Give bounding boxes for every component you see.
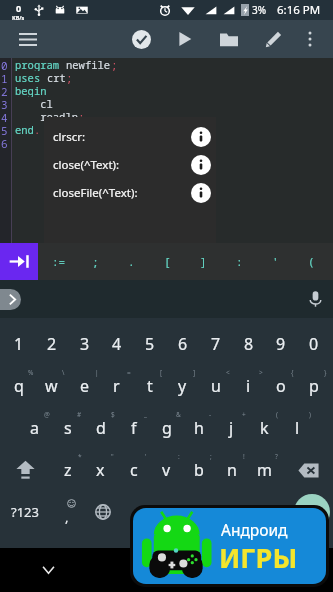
button[interactable]: Run [175, 20, 195, 58]
staticText: := [52, 254, 66, 269]
staticText: 5 [145, 333, 155, 355]
button[interactable]: Space [119, 491, 250, 533]
button[interactable]: 6 [166, 323, 199, 365]
button[interactable]: 9 [264, 323, 297, 365]
staticText: o [276, 375, 286, 397]
button[interactable]: := [41, 243, 77, 280]
button[interactable]: ; [77, 243, 113, 280]
button[interactable]: 7 [199, 323, 232, 365]
button[interactable]: h [182, 407, 215, 449]
staticText: ' [272, 254, 279, 269]
button[interactable]: f [117, 407, 150, 449]
button[interactable]: 0 [297, 323, 330, 365]
staticText: r [113, 375, 120, 397]
staticText: . [34, 123, 41, 136]
staticText: cl [15, 97, 53, 110]
button[interactable]: p [297, 365, 330, 407]
button[interactable]: Back [146, 548, 186, 592]
staticText: - [209, 410, 212, 419]
button[interactable]: a [18, 407, 51, 449]
button[interactable]: l [281, 407, 314, 449]
button[interactable]: Enter [283, 491, 333, 533]
staticText: e [80, 375, 90, 397]
staticText: ] [200, 254, 207, 269]
button[interactable]: Save [131, 20, 151, 58]
button[interactable]: 3 [68, 323, 101, 365]
button[interactable]: Backspace [283, 449, 333, 491]
button[interactable]: d [84, 407, 117, 449]
button[interactable]: c [117, 449, 150, 491]
staticText: } [324, 368, 327, 377]
button[interactable]: Emoji [50, 491, 83, 533]
staticText: ( [276, 410, 278, 419]
button[interactable]: w [35, 365, 68, 407]
button[interactable]: Expand suggestions [0, 289, 21, 310]
button[interactable]: k [248, 407, 281, 449]
staticText: 1 [1, 71, 8, 84]
button[interactable]: r [100, 365, 133, 407]
staticText: f [131, 417, 137, 439]
button[interactable]: n [215, 449, 248, 491]
staticText: b [194, 459, 204, 481]
button[interactable]: 5 [133, 323, 166, 365]
button[interactable]: Hide keyboard [28, 548, 68, 592]
button[interactable]: close(^Text): [44, 151, 216, 179]
staticText: ] [193, 368, 196, 377]
button[interactable]: Shift [0, 449, 50, 491]
button[interactable]: u [199, 365, 232, 407]
staticText: ; [78, 110, 85, 123]
button[interactable]: z [51, 449, 84, 491]
staticText: ; [210, 452, 212, 461]
staticText: 3 [80, 333, 90, 355]
staticText: 3% [252, 3, 267, 17]
button[interactable]: 1 [2, 323, 35, 365]
button[interactable]: 8 [232, 323, 265, 365]
staticText: ИГРЫ [219, 539, 298, 576]
button[interactable]: ?123 [0, 491, 50, 533]
staticText: y [178, 375, 187, 397]
button[interactable]: Switch language [86, 491, 119, 533]
button[interactable]: q [2, 365, 35, 407]
button[interactable]: 4 [100, 323, 133, 365]
button[interactable]: v [150, 449, 183, 491]
button[interactable]: . [250, 491, 283, 533]
button[interactable]: Menu [8, 20, 48, 58]
button[interactable]: : [221, 243, 257, 280]
button[interactable]: e [68, 365, 101, 407]
button[interactable]: Info [191, 155, 211, 175]
button[interactable]: Home [265, 548, 305, 592]
button[interactable]: Info [191, 183, 211, 203]
button[interactable]: ( [293, 243, 329, 280]
button[interactable]: x [84, 449, 117, 491]
button[interactable]: [ [149, 243, 185, 280]
staticText: 7 [211, 333, 221, 355]
button[interactable]: t [133, 365, 166, 407]
button[interactable]: s [51, 407, 84, 449]
staticText: h [194, 417, 204, 439]
button[interactable]: ] [185, 243, 221, 280]
button[interactable]: m [248, 449, 281, 491]
button[interactable]: Open file [219, 20, 239, 58]
button[interactable]: g [150, 407, 183, 449]
staticText: z [64, 459, 72, 481]
button[interactable]: . [113, 243, 149, 280]
staticText: k [260, 417, 269, 439]
staticText: g [162, 417, 172, 439]
button[interactable]: Tab [0, 243, 38, 280]
button[interactable]: Info [191, 127, 211, 147]
button[interactable]: y [166, 365, 199, 407]
button[interactable]: ' [257, 243, 293, 280]
staticText: 8 [244, 333, 254, 355]
button[interactable]: 2 [35, 323, 68, 365]
button[interactable]: o [264, 365, 297, 407]
button[interactable]: Voice input [306, 289, 325, 309]
button[interactable]: clrscr: [44, 123, 216, 151]
button[interactable]: i [232, 365, 265, 407]
button[interactable]: j [215, 407, 248, 449]
button[interactable]: closeFile(^Text): [44, 179, 216, 207]
staticText: 0 [16, 2, 22, 14]
button[interactable]: b [182, 449, 215, 491]
button[interactable]: Edit [263, 20, 283, 58]
staticText: + [242, 410, 246, 419]
button[interactable]: More options [300, 20, 320, 58]
